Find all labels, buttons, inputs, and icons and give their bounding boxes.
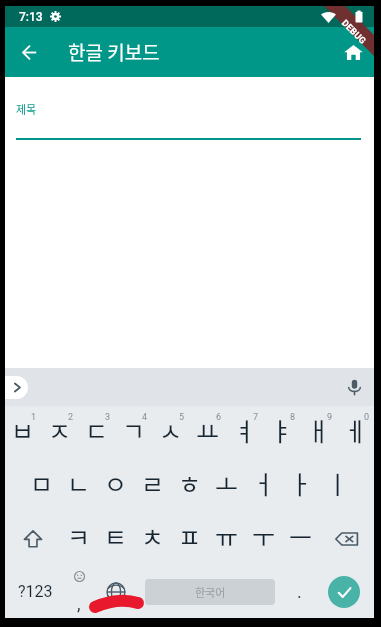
staticText: ㅂ — [11, 412, 35, 448]
staticText: 9 — [327, 412, 333, 423]
staticText: ㅅ — [159, 412, 183, 448]
button[interactable]: ㄴ — [60, 459, 97, 512]
button[interactable]: Done — [321, 565, 367, 618]
button[interactable]: ㅜ — [245, 512, 282, 565]
staticText: 5 — [179, 412, 185, 423]
staticText: ㅔ — [344, 412, 368, 448]
button[interactable]: ㅅ — [152, 406, 189, 459]
staticText: DEBUG — [339, 18, 368, 47]
staticText: ㅁ — [30, 465, 54, 501]
button[interactable]: ㅕ — [226, 406, 263, 459]
button[interactable]: 한국어 — [145, 579, 275, 605]
button[interactable]: Change language — [97, 565, 135, 618]
staticText: , — [77, 593, 81, 614]
staticText: ㅌ — [104, 518, 128, 554]
button[interactable]: ㄱ — [115, 406, 152, 459]
staticText: ㄱ — [122, 412, 146, 448]
staticText: ㅏ — [289, 465, 313, 501]
staticText: 0 — [364, 412, 370, 423]
button[interactable]: ㅐ — [300, 406, 337, 459]
button[interactable]: ㅇ — [97, 459, 134, 512]
staticText: 4 — [142, 412, 148, 423]
button[interactable]: ?123 — [9, 565, 61, 618]
button[interactable]: ㅠ — [208, 512, 245, 565]
staticText: ㅍ — [178, 518, 202, 554]
staticText: . — [297, 581, 302, 602]
staticText: ㅊ — [141, 518, 165, 554]
button[interactable]: ㅁ — [23, 459, 60, 512]
staticText: 3 — [105, 412, 111, 423]
button[interactable]: Back — [5, 27, 53, 77]
staticText: 제목 — [16, 101, 37, 117]
button[interactable]: ㅛ — [189, 406, 226, 459]
staticText: 1 — [31, 412, 37, 423]
staticText: 한글 키보드 — [68, 38, 160, 66]
staticText: 7 — [253, 412, 259, 423]
button[interactable]: . — [279, 565, 319, 618]
button[interactable]: ㅔ — [337, 406, 374, 459]
button[interactable]: , — [61, 565, 97, 618]
button[interactable]: ㅌ — [97, 512, 134, 565]
staticText: ㅑ — [270, 412, 294, 448]
button[interactable]: ㅓ — [245, 459, 282, 512]
staticText: 2 — [68, 412, 74, 423]
staticText: ㅠ — [215, 518, 239, 554]
button[interactable]: ㅎ — [171, 459, 208, 512]
staticText: ㅜ — [252, 518, 276, 554]
button[interactable]: ㄷ — [78, 406, 115, 459]
staticText: ㅣ — [326, 465, 350, 501]
button[interactable]: Expand toolbar — [5, 376, 28, 399]
button[interactable]: ㅍ — [171, 512, 208, 565]
button[interactable]: ㅏ — [282, 459, 319, 512]
button[interactable]: ㅋ — [60, 512, 97, 565]
staticText: ㅗ — [215, 465, 239, 501]
button[interactable]: ㅗ — [208, 459, 245, 512]
staticText: ?123 — [18, 582, 53, 601]
button[interactable]: ㅡ — [282, 512, 319, 565]
staticText: ㄹ — [141, 465, 165, 501]
staticText: ㅎ — [178, 465, 202, 501]
staticText: 8 — [290, 412, 296, 423]
button[interactable]: ㅊ — [134, 512, 171, 565]
button[interactable]: ㅂ — [5, 406, 41, 459]
button[interactable]: ㅣ — [319, 459, 356, 512]
staticText: 6 — [216, 412, 222, 423]
staticText: ㄷ — [85, 412, 109, 448]
staticText: ㅕ — [233, 412, 257, 448]
staticText: ㅇ — [104, 465, 128, 501]
staticText: ㅡ — [289, 518, 313, 554]
staticText: ㅋ — [67, 518, 91, 554]
button[interactable]: Home — [332, 27, 374, 77]
staticText: ㅓ — [252, 465, 276, 501]
staticText: ㄴ — [67, 465, 91, 501]
button[interactable]: ㅑ — [263, 406, 300, 459]
staticText: ㅛ — [196, 412, 220, 448]
button[interactable]: Voice input — [338, 371, 370, 403]
staticText: ㅈ — [48, 412, 72, 448]
button[interactable]: ㅈ — [41, 406, 78, 459]
button[interactable]: Shift — [5, 512, 60, 565]
button[interactable]: Backspace — [319, 512, 374, 565]
staticText: ㅐ — [307, 412, 331, 448]
button[interactable]: ㄹ — [134, 459, 171, 512]
staticText: 한국어 — [195, 584, 226, 600]
staticText: 7:13 — [19, 10, 43, 24]
